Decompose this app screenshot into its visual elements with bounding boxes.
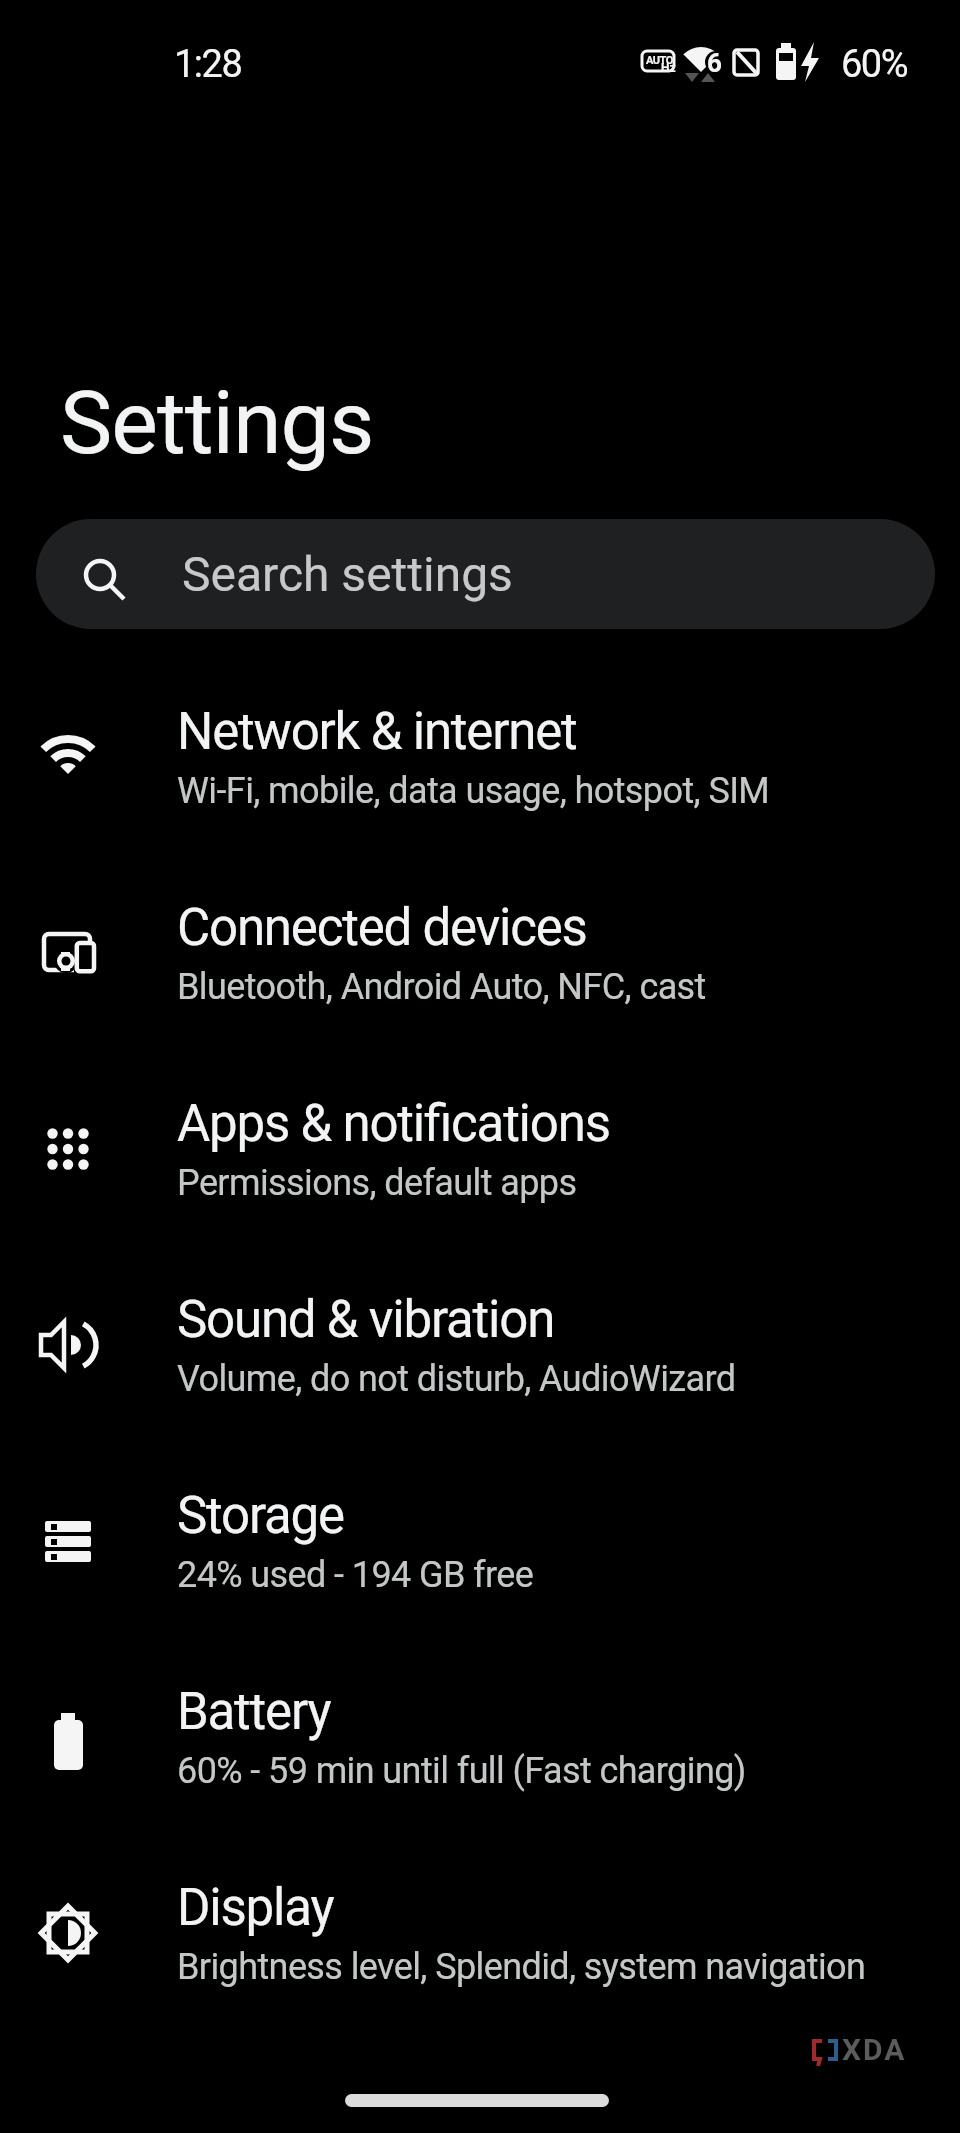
staticText: Brightness level, Splendid, system navig…: [177, 1946, 866, 1988]
button[interactable]: Display: [0, 1835, 960, 2031]
staticText: 60%: [841, 42, 908, 87]
staticText: Display: [177, 1878, 334, 1938]
staticText: Sound & vibration: [177, 1290, 555, 1350]
staticText: Storage: [177, 1486, 344, 1546]
staticText: Wi-Fi, mobile, data usage, hotspot, SIM: [177, 770, 770, 812]
staticText: XDA: [842, 2032, 907, 2067]
staticText: Settings: [60, 371, 374, 474]
staticText: 60% - 59 min until full (Fast charging): [177, 1750, 746, 1792]
staticText: Hz: [661, 61, 676, 75]
button[interactable]: Apps & notifications: [0, 1051, 960, 1247]
button[interactable]: Battery: [0, 1639, 960, 1835]
staticText: 24% used - 194 GB free: [177, 1554, 534, 1596]
staticText: Apps & notifications: [177, 1094, 610, 1154]
staticText: Bluetooth, Android Auto, NFC, cast: [177, 966, 706, 1008]
button[interactable]: Connected devices: [0, 855, 960, 1051]
button[interactable]: Sound & vibration: [0, 1247, 960, 1443]
staticText: Search settings: [182, 546, 513, 602]
button[interactable]: Storage: [0, 1443, 960, 1639]
staticText: Connected devices: [177, 898, 587, 958]
staticText: Volume, do not disturb, AudioWizard: [177, 1358, 736, 1400]
staticText: Battery: [177, 1682, 331, 1742]
staticText: Network & internet: [177, 702, 577, 762]
button[interactable]: Network & internet: [0, 659, 960, 855]
staticText: Permissions, default apps: [177, 1162, 577, 1204]
button[interactable]: Search settings: [36, 519, 935, 629]
staticText: AUTO: [646, 54, 673, 67]
staticText: 1:28: [174, 42, 242, 87]
staticText: 6: [707, 48, 722, 78]
button[interactable]: [345, 2094, 609, 2107]
